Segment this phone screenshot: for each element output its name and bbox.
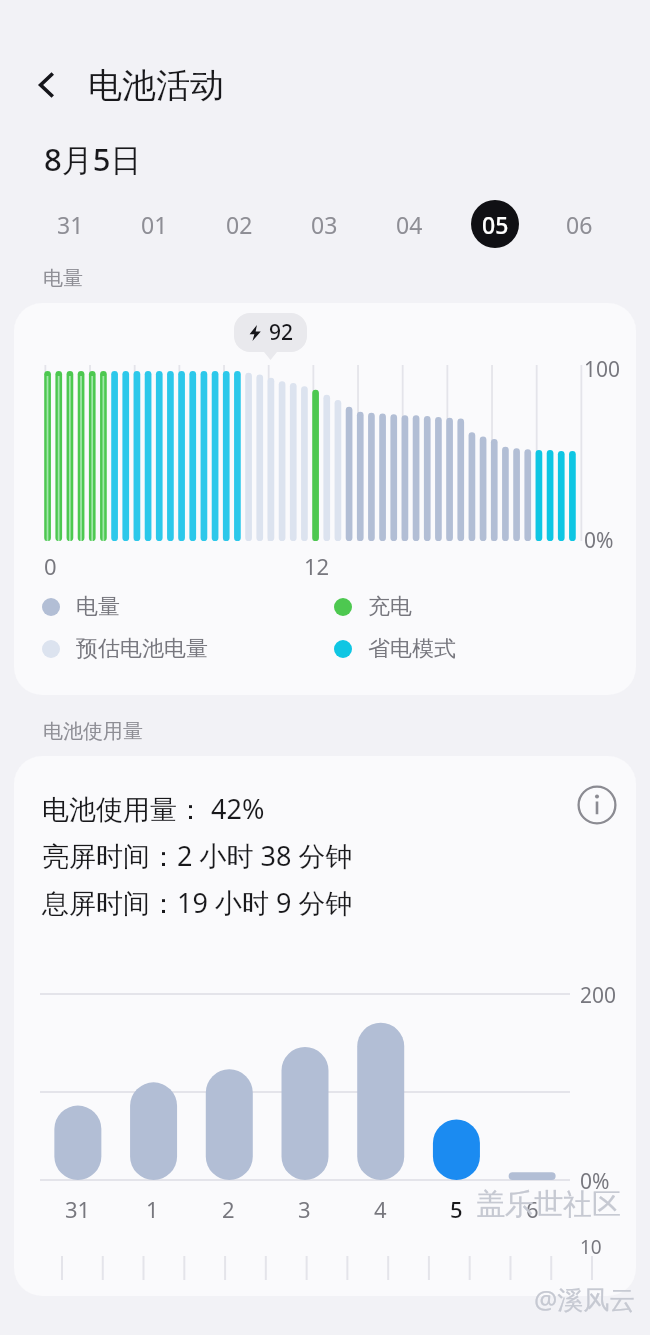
staticText: 预估电池电量: [76, 635, 208, 663]
staticText: 2: [222, 1194, 235, 1224]
staticText: 5: [450, 1194, 463, 1224]
staticText: 电池使用量: [43, 719, 143, 744]
button[interactable]: Back: [20, 58, 74, 112]
button[interactable]: 04: [367, 194, 452, 254]
button[interactable]: 01: [112, 194, 197, 254]
staticText: 电池使用量： 42%: [42, 790, 265, 827]
staticText: 电量: [43, 266, 83, 291]
button[interactable]: 05: [452, 194, 537, 254]
staticText: 亮屏时间：2 小时 38 分钟: [42, 837, 353, 874]
staticText: 200: [580, 981, 617, 1010]
staticText: 电量: [76, 593, 120, 621]
staticText: 4: [374, 1194, 387, 1224]
staticText: 6: [526, 1194, 539, 1224]
button[interactable]: 92: [14, 303, 636, 695]
staticText: 100: [584, 355, 621, 384]
button[interactable]: 02: [197, 194, 282, 254]
staticText: 0%: [584, 526, 614, 555]
staticText: 0: [44, 551, 57, 581]
staticText: 盖乐世社区: [476, 1186, 621, 1223]
staticText: 02: [226, 209, 253, 240]
staticText: 12: [304, 551, 330, 581]
staticText: 息屏时间：19 小时 9 分钟: [42, 884, 353, 921]
button[interactable]: Info: [568, 776, 626, 834]
staticText: 3: [298, 1194, 311, 1224]
staticText: 1: [146, 1194, 159, 1224]
staticText: 05: [482, 209, 509, 240]
staticText: 03: [311, 209, 338, 240]
staticText: 省电模式: [368, 635, 456, 663]
staticText: 充电: [368, 593, 412, 621]
staticText: 01: [141, 209, 168, 240]
staticText: 31: [65, 1194, 91, 1224]
staticText: 04: [396, 209, 423, 240]
staticText: 92: [269, 318, 294, 347]
staticText: 0%: [580, 1167, 610, 1196]
staticText: 31: [57, 209, 84, 240]
staticText: @溪风云: [534, 1281, 636, 1317]
button[interactable]: 06: [537, 194, 622, 254]
staticText: 10: [580, 1234, 602, 1260]
button[interactable]: 03: [282, 194, 367, 254]
staticText: 电池活动: [88, 64, 224, 107]
staticText: 8月5日: [44, 138, 142, 180]
button[interactable]: 31: [28, 194, 112, 254]
staticText: 06: [566, 209, 593, 240]
